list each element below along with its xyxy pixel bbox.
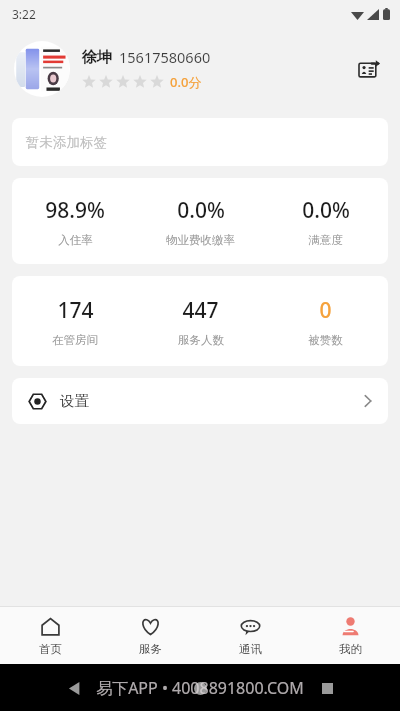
staticText: 通讯 <box>239 642 262 656</box>
staticText: 首页 <box>39 642 62 656</box>
staticText: 入住率 <box>58 233 93 247</box>
staticText: 被赞数 <box>308 333 343 347</box>
staticText: 我的 <box>339 642 362 656</box>
button[interactable]: 98.9% <box>12 196 138 247</box>
staticText: 在管房间 <box>52 333 98 347</box>
button[interactable]: 分享名片 <box>352 52 386 86</box>
staticText: 0.0% <box>302 196 350 225</box>
button[interactable]: 服务 <box>100 610 200 662</box>
button[interactable]: 徐坤 <box>0 28 400 110</box>
staticText: 服务 <box>139 642 162 656</box>
staticText: 物业费收缴率 <box>166 233 235 247</box>
button[interactable]: 暂未添加标签 <box>12 118 388 166</box>
button[interactable]: 我的 <box>300 610 400 662</box>
button[interactable]: 最近任务 <box>312 673 342 703</box>
button[interactable]: 174 <box>12 296 138 347</box>
button[interactable]: 447 <box>138 296 263 347</box>
staticText: 0 <box>319 296 332 325</box>
button[interactable]: 0.0% <box>263 196 388 247</box>
button[interactable]: 返回 <box>58 673 88 703</box>
button[interactable]: 主屏幕 <box>185 673 215 703</box>
button[interactable]: 首页 <box>0 610 100 662</box>
staticText: 暂未添加标签 <box>26 134 107 151</box>
staticText: 447 <box>182 296 219 325</box>
staticText: 15617580660 <box>119 47 211 67</box>
staticText: 0.0分 <box>170 73 202 91</box>
staticText: 3:22 <box>12 6 36 22</box>
button[interactable]: 通讯 <box>200 610 300 662</box>
staticText: 0.0% <box>177 196 225 225</box>
staticText: 98.9% <box>45 196 105 225</box>
staticText: 174 <box>57 296 94 325</box>
staticText: 易下APP • 4008891800.COM <box>96 677 304 699</box>
button[interactable]: 设置 <box>12 378 388 424</box>
button[interactable]: 0.0% <box>138 196 263 247</box>
staticText: 徐坤 <box>82 48 112 67</box>
staticText: 服务人数 <box>178 333 224 347</box>
button[interactable]: 0 <box>263 296 388 347</box>
staticText: 设置 <box>60 392 89 410</box>
staticText: 满意度 <box>308 233 343 247</box>
